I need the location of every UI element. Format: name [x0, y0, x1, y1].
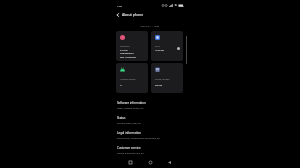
staticText: Status: [117, 116, 126, 120]
button[interactable]: Recent apps: [126, 158, 135, 167]
staticText: 12.00 GB: [155, 49, 164, 52]
staticText: Model, software version, etc: [117, 107, 144, 110]
staticText: one UI 3.1 | Oreo: [112, 25, 188, 28]
button[interactable]: Back: [165, 158, 174, 167]
button[interactable]: RAM: [151, 31, 183, 61]
staticText: Legal information: [117, 131, 142, 135]
button[interactable]: Customer service: [112, 143, 188, 158]
staticText: 11: [120, 84, 123, 87]
staticText: Privacy Policy, authentication informati…: [117, 137, 160, 140]
button[interactable]: Phone storage: [151, 63, 183, 93]
staticText: Snapdragon 8: [120, 52, 134, 55]
staticText: About phone: [122, 12, 144, 17]
staticText: RAM: [155, 45, 160, 48]
staticText: Processor: [120, 45, 130, 48]
button[interactable]: Home: [146, 158, 155, 167]
staticText: 2.2 GHz: [120, 49, 128, 52]
staticText: 256 GB: [155, 84, 163, 87]
staticText: Android version: [120, 78, 136, 81]
staticText: 84%: [179, 4, 184, 7]
staticText: Manual, E-warranty card, etc: [117, 152, 144, 155]
button[interactable]: Software information: [112, 98, 188, 113]
button[interactable]: Status: [112, 113, 188, 128]
staticText: Gen 1 Octa-core: [120, 56, 136, 59]
staticText: 1:45: [117, 4, 122, 7]
button[interactable]: Processor: [116, 31, 148, 61]
button[interactable]: Navigate up: [114, 11, 122, 19]
staticText: SIM card status, IMEI, etc: [117, 122, 141, 125]
staticText: Customer service: [117, 146, 141, 150]
staticText: Software information: [117, 101, 146, 105]
button[interactable]: Legal information: [112, 128, 188, 143]
staticText: Phone storage: [155, 78, 170, 81]
button[interactable]: Android version: [116, 63, 148, 93]
